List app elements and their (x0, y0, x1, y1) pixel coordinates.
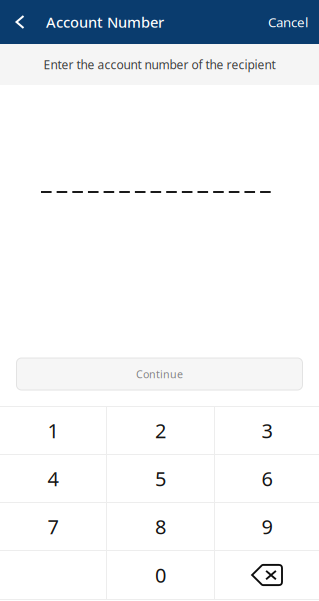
staticText: 1 (47, 417, 58, 444)
button[interactable]: 1 (0, 407, 106, 454)
staticText: 4 (47, 465, 58, 492)
button[interactable]: 3 (215, 407, 319, 454)
staticText: Account Number (46, 12, 164, 32)
staticText: 9 (261, 513, 272, 540)
button[interactable]: 5 (107, 455, 214, 502)
staticText: Cancel (268, 13, 308, 31)
staticText: Continue (136, 367, 183, 381)
button[interactable]: 9 (215, 503, 319, 550)
button[interactable]: 4 (0, 455, 106, 502)
button[interactable]: Back (0, 0, 40, 44)
button[interactable]: Continue (16, 358, 302, 390)
button[interactable]: 8 (107, 503, 214, 550)
staticText: 5 (155, 465, 166, 492)
staticText: 6 (261, 465, 272, 492)
staticText: 7 (47, 513, 58, 540)
staticText: 0 (155, 562, 166, 588)
button[interactable]: 7 (0, 503, 106, 550)
staticText: Enter the account number of the recipien… (43, 56, 275, 72)
button[interactable]: 0 (107, 551, 214, 599)
button[interactable]: Cancel (257, 0, 319, 44)
staticText: 3 (261, 417, 272, 444)
button[interactable]: 6 (215, 455, 319, 502)
staticText: 8 (155, 513, 166, 540)
button[interactable]: 2 (107, 407, 214, 454)
button[interactable]: Delete (215, 551, 319, 599)
staticText: 2 (155, 417, 166, 444)
